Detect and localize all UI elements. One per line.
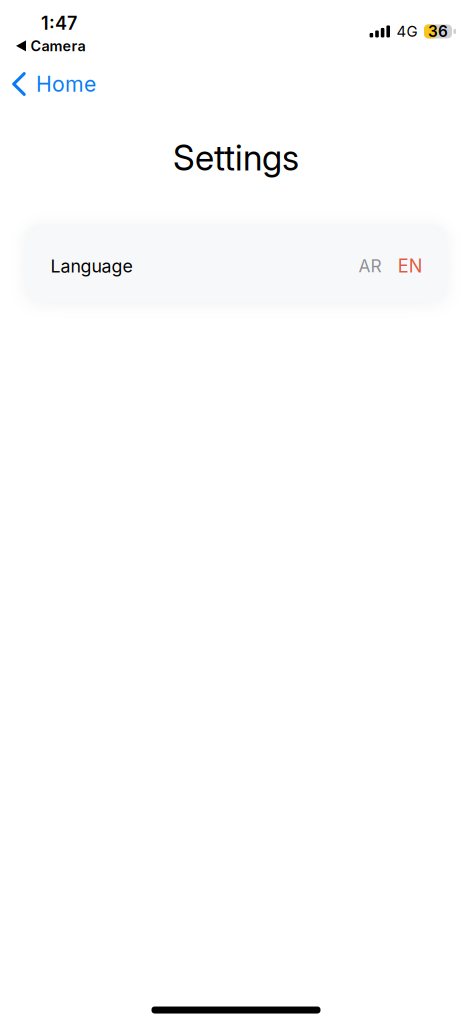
button[interactable]: Home	[0, 63, 108, 105]
staticText: EN	[398, 255, 423, 277]
staticText: 36	[428, 22, 448, 41]
staticText: Settings	[173, 137, 299, 179]
staticText: 1:47	[41, 12, 77, 34]
staticText: Home	[36, 71, 96, 97]
button[interactable]: Return to Camera	[16, 37, 86, 55]
button[interactable]: EN	[390, 241, 431, 285]
staticText: Camera	[31, 37, 86, 55]
staticText: AR	[358, 255, 381, 276]
button[interactable]: AR	[350, 241, 390, 285]
staticText: 4G	[396, 22, 417, 40]
staticText: Language	[50, 255, 132, 277]
